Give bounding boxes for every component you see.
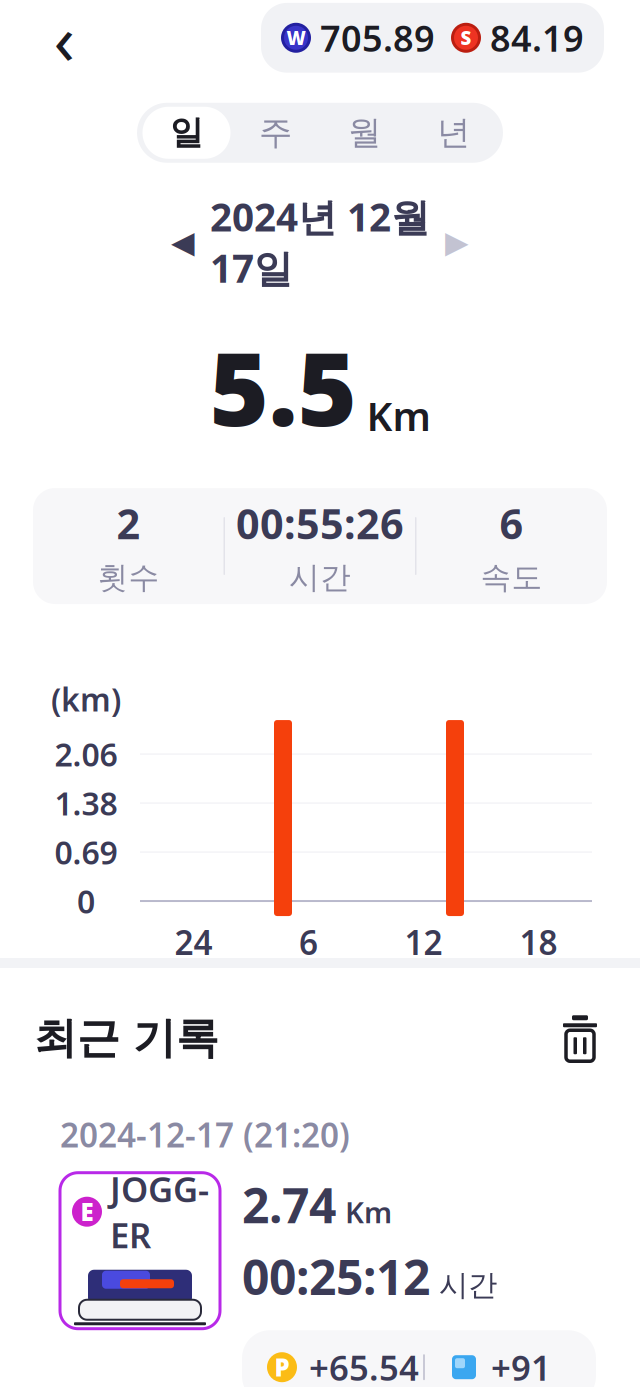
staticText: 주: [259, 112, 292, 153]
staticText: 일: [170, 112, 203, 153]
button[interactable]: 2024-12-17 (21:20): [34, 1088, 606, 1387]
staticText: E: [80, 1196, 93, 1228]
staticText: 2024-12-17 (21:20): [60, 1112, 350, 1157]
staticText: 6: [299, 920, 318, 964]
staticText: +65.54: [309, 1344, 419, 1387]
button[interactable]: Back: [36, 10, 92, 66]
staticText: JOGGER: [110, 1166, 209, 1258]
staticText: 6: [499, 496, 523, 551]
staticText: ‹: [53, 0, 74, 84]
staticText: ◀: [171, 225, 195, 259]
button[interactable]: 주: [231, 107, 320, 159]
staticText: 시간: [289, 559, 351, 596]
staticText: 0: [77, 880, 95, 922]
staticText: Km: [345, 1192, 392, 1231]
staticText: 705.89: [320, 14, 435, 62]
staticText: 2.06: [54, 733, 117, 775]
staticText: Km: [366, 389, 430, 442]
staticText: 12: [404, 920, 442, 964]
staticText: (km): [51, 678, 121, 720]
staticText: 횟수: [97, 559, 159, 596]
staticText: 2.74: [242, 1173, 336, 1236]
staticText: 84.19: [490, 14, 584, 62]
staticText: 24: [174, 920, 212, 964]
staticText: 속도: [480, 559, 542, 596]
staticText: S: [460, 25, 471, 50]
staticText: 00:25:12: [242, 1244, 430, 1308]
staticText: 월: [348, 112, 381, 153]
staticText: P: [274, 1351, 289, 1383]
button[interactable]: Delete records: [554, 1012, 606, 1064]
button[interactable]: 일: [142, 107, 231, 159]
staticText: 최근 기록: [34, 1012, 219, 1064]
staticText: 1.38: [54, 782, 117, 824]
staticText: 00:55:26: [236, 496, 404, 551]
staticText: ▶: [445, 225, 469, 259]
staticText: 년: [437, 112, 470, 153]
staticText: +91: [491, 1344, 551, 1387]
staticText: 시간: [439, 1267, 497, 1303]
button[interactable]: Next day: [430, 215, 484, 269]
staticText: 2: [116, 496, 140, 551]
staticText: 5.5: [209, 319, 356, 454]
staticText: 0.69: [54, 831, 117, 873]
button[interactable]: 월: [320, 107, 409, 159]
button[interactable]: Previous day: [156, 215, 210, 269]
staticText: W: [286, 25, 305, 50]
staticText: 18: [519, 920, 557, 964]
button[interactable]: 년: [409, 107, 498, 159]
staticText: 2024년 12월 17일: [210, 191, 430, 293]
